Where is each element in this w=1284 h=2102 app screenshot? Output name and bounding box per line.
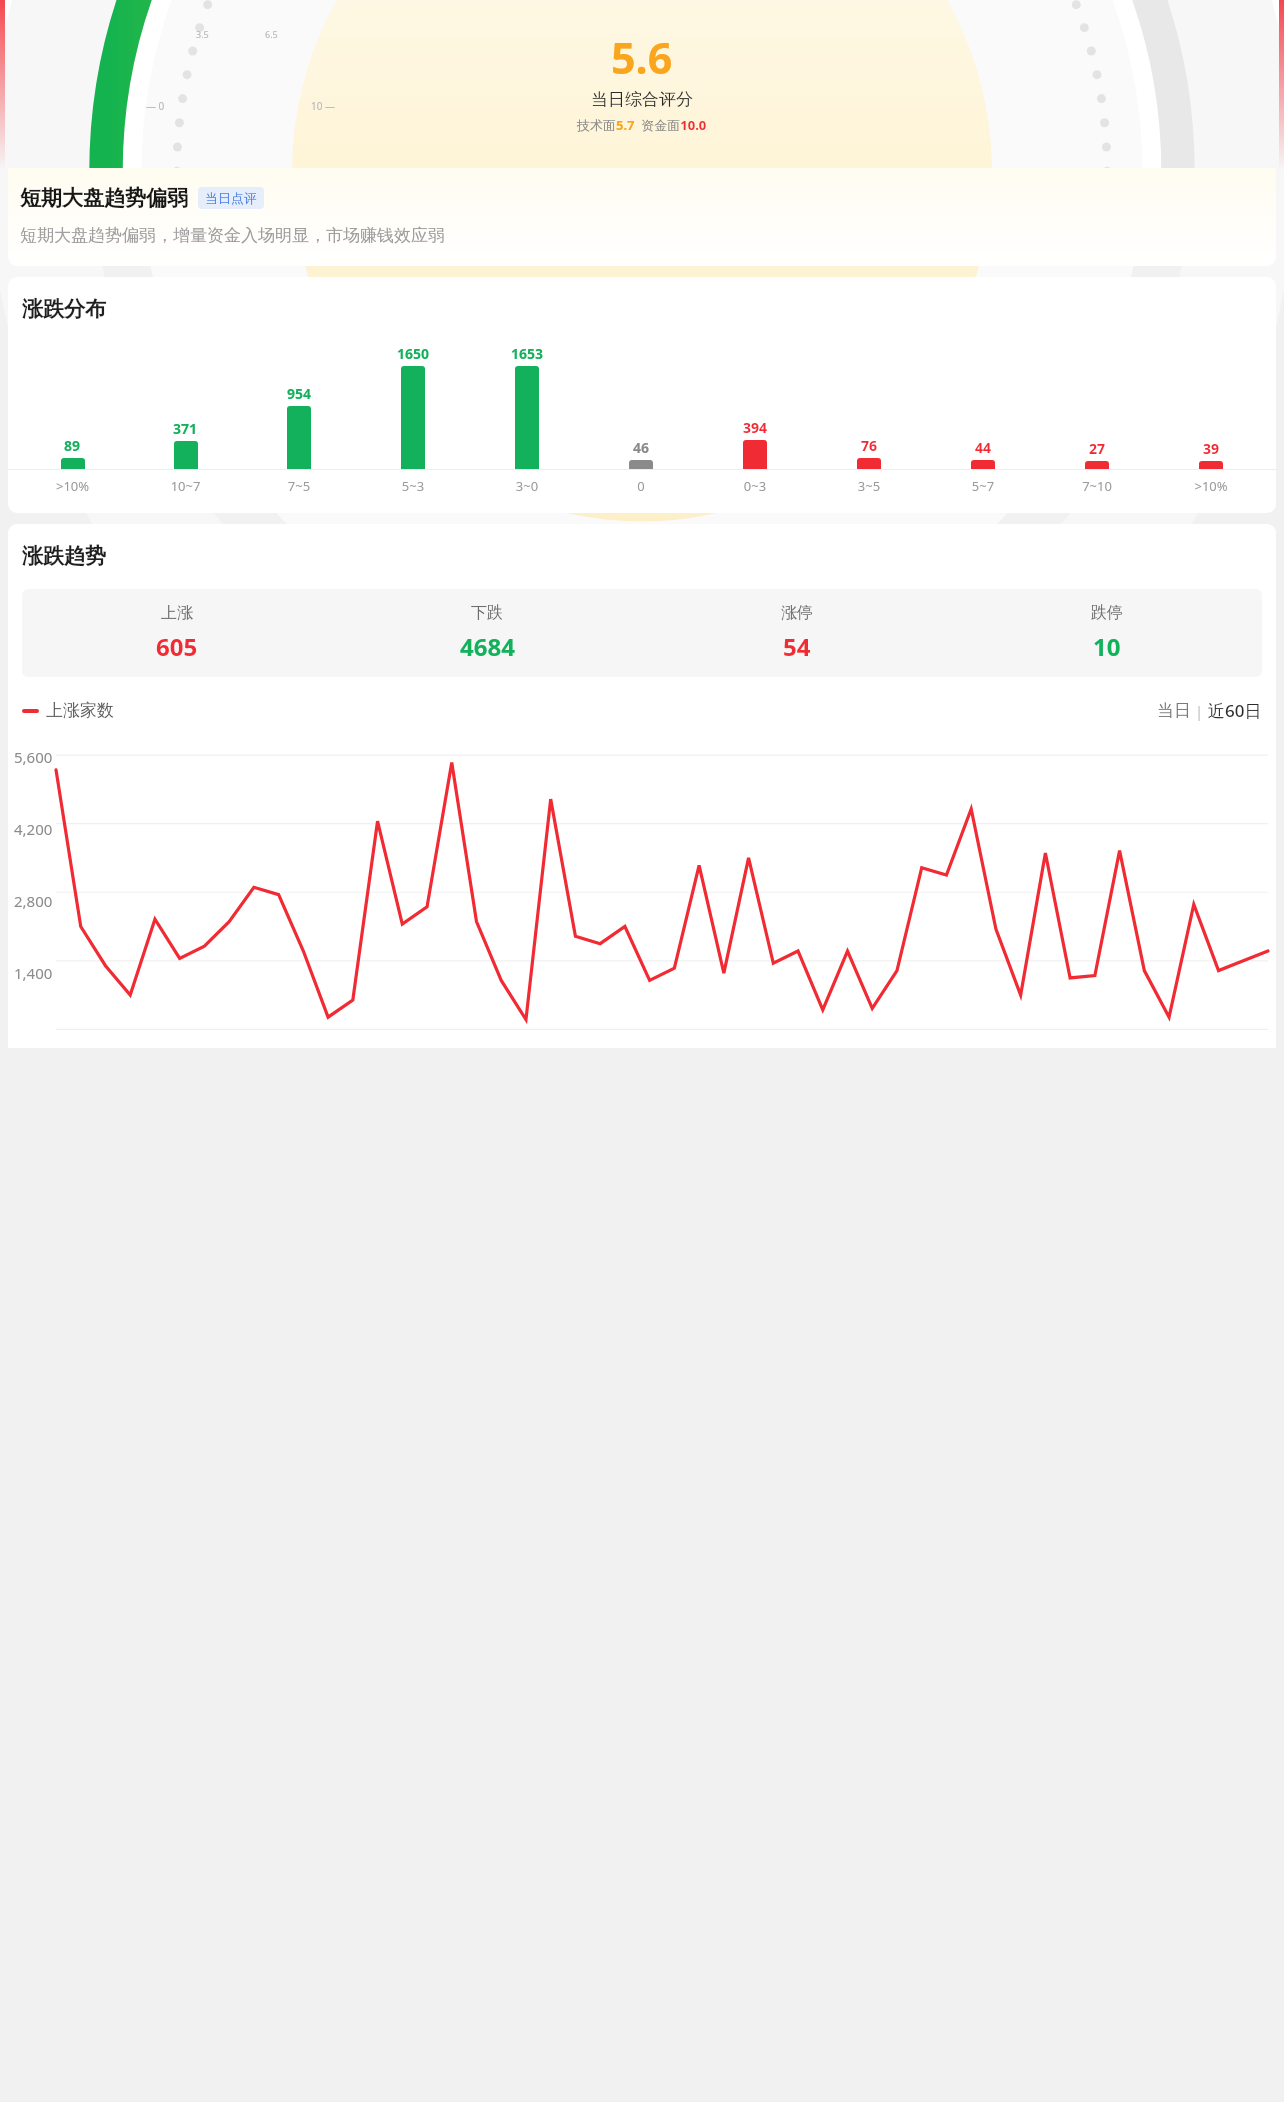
staticText: 605 (156, 630, 198, 663)
staticText: 0~3 (698, 477, 812, 495)
staticText: 44 (975, 438, 992, 457)
staticText: 短期大盘趋势偏弱，增量资金入场明显，市场赚钱效应弱 (20, 225, 445, 246)
staticText: 954 (287, 384, 312, 403)
staticText: 涨停 (781, 603, 813, 623)
button[interactable]: 当日 (1157, 700, 1191, 721)
staticText: 3~0 (470, 477, 584, 495)
staticText: 54 (783, 630, 811, 663)
staticText: 5.6 (611, 28, 673, 87)
staticText: 7~10 (1040, 477, 1154, 495)
staticText: >10% (16, 477, 129, 495)
staticText: 3.5 (196, 28, 209, 40)
staticText: 89 (64, 436, 81, 455)
staticText: 76 (861, 436, 878, 455)
button[interactable]: 涨跌趋势 (8, 524, 1276, 1048)
staticText: 当日综合评分 (591, 89, 693, 110)
button[interactable]: 短期大盘趋势偏弱 (8, 168, 1276, 266)
staticText: 下跌 (471, 603, 503, 623)
staticText: 2,800 (14, 891, 53, 911)
staticText: 涨跌分布 (22, 296, 106, 322)
staticText: 5~3 (356, 477, 470, 495)
staticText: 4,200 (14, 819, 53, 839)
staticText: 1650 (397, 344, 430, 363)
staticText: | (1191, 701, 1208, 721)
staticText: 10 (1093, 630, 1121, 663)
staticText: 10~7 (129, 477, 242, 495)
staticText: 0 (584, 477, 698, 495)
staticText: 3~5 (812, 477, 926, 495)
staticText: 当日 (1157, 700, 1191, 721)
staticText: 上涨家数 (46, 700, 114, 721)
staticText: 涨跌趋势 (22, 543, 106, 569)
staticText: 4684 (460, 630, 515, 663)
staticText: 技术面5.7 资金面10.0 (577, 116, 707, 134)
button[interactable]: 近60日 (1208, 699, 1262, 722)
staticText: >10% (1154, 477, 1268, 495)
staticText: 短期大盘趋势偏弱 (20, 185, 188, 211)
button[interactable]: 涨跌分布 (8, 277, 1276, 513)
staticText: 46 (633, 438, 650, 457)
staticText: — 0 (146, 99, 165, 113)
staticText: 39 (1203, 439, 1220, 458)
staticText: 6.5 (265, 28, 278, 40)
staticText: 1653 (511, 344, 544, 363)
staticText: 5~7 (926, 477, 1040, 495)
staticText: 跌停 (1091, 603, 1123, 623)
staticText: 7~5 (242, 477, 356, 495)
staticText: 上涨 (161, 603, 193, 623)
staticText: 1,400 (14, 963, 53, 983)
staticText: 27 (1089, 439, 1106, 458)
staticText: 394 (743, 418, 768, 437)
staticText: 近60日 (1208, 699, 1262, 722)
staticText: 371 (173, 419, 198, 438)
staticText: 10 — (311, 99, 336, 113)
staticText: 5,600 (14, 747, 53, 767)
staticText: 当日点评 (205, 190, 257, 206)
